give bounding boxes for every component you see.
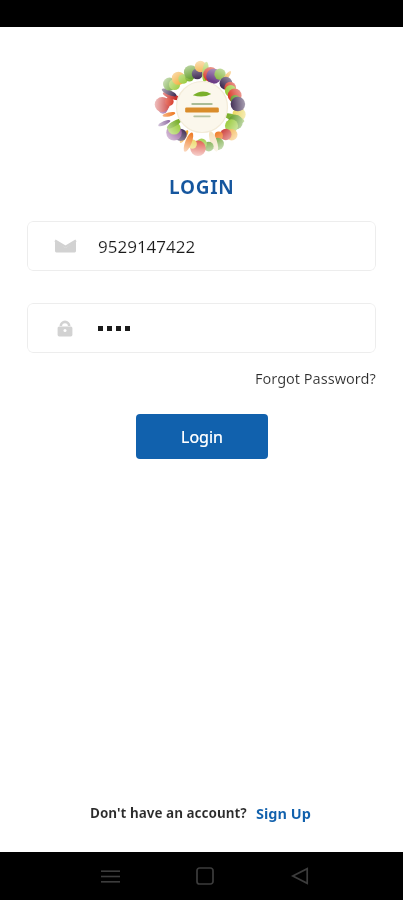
button[interactable] [27,303,376,353]
button[interactable]: Sign Up [254,800,313,826]
button[interactable]: Forgot Password? [253,365,378,391]
staticText: Forgot Password? [255,368,376,388]
button[interactable]: Back [276,852,324,900]
staticText: 9529147422 [98,235,196,258]
staticText: Login [181,426,223,448]
staticText: LOGIN [169,174,235,200]
button[interactable]: Recent apps [86,852,134,900]
staticText: Sign Up [256,803,311,823]
staticText: Don't have an account? [90,804,247,822]
button[interactable]: Home [181,852,229,900]
button[interactable]: 9529147422 [27,221,376,271]
button[interactable]: Login [136,414,268,459]
